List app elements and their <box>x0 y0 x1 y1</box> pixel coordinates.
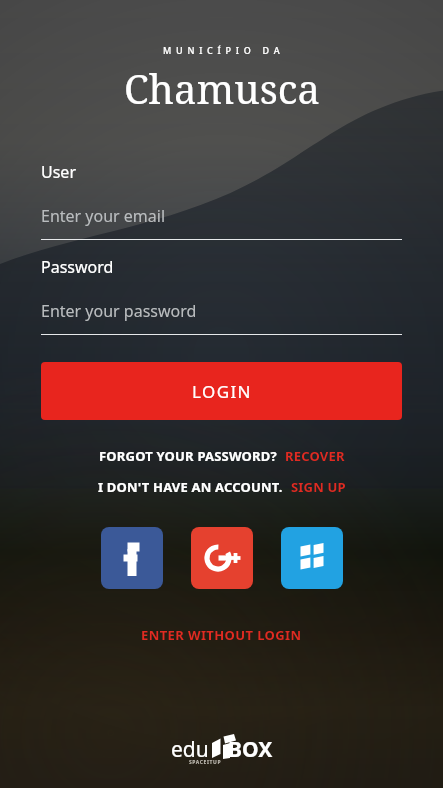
staticText: Enter your password <box>41 300 197 322</box>
staticText: edu <box>171 735 209 764</box>
staticText: RECOVER <box>285 447 345 465</box>
other: eduBOX by SPACEITUP <box>157 732 287 766</box>
button[interactable]: I DON'T HAVE AN ACCOUNT. <box>92 475 352 499</box>
button[interactable]: Sign in with Facebook <box>101 527 163 589</box>
staticText: I DON'T HAVE AN ACCOUNT. <box>98 478 283 496</box>
staticText: Password <box>41 256 114 278</box>
staticText: ENTER WITHOUT LOGIN <box>141 626 302 644</box>
staticText: Chamusca <box>124 61 320 115</box>
button[interactable]: FORGOT YOUR PASSWORD? <box>93 444 351 468</box>
staticText: Enter your email <box>41 205 166 227</box>
button[interactable]: Enter your password <box>41 300 402 322</box>
button[interactable]: ENTER WITHOUT LOGIN <box>131 622 312 648</box>
staticText: FORGOT YOUR PASSWORD? <box>99 447 277 465</box>
button[interactable]: Sign in with Google Plus <box>191 527 253 589</box>
staticText: BOX <box>228 735 273 764</box>
button[interactable]: Enter your email <box>41 205 402 227</box>
button[interactable]: LOGIN <box>41 362 402 420</box>
staticText: User <box>41 161 76 183</box>
staticText: LOGIN <box>192 380 252 403</box>
button[interactable]: Sign in with Microsoft <box>281 527 343 589</box>
staticText: SPACEITUP <box>189 759 222 766</box>
staticText: SIGN UP <box>291 478 346 496</box>
staticText: M U N I C Í P I O D A <box>163 44 281 56</box>
